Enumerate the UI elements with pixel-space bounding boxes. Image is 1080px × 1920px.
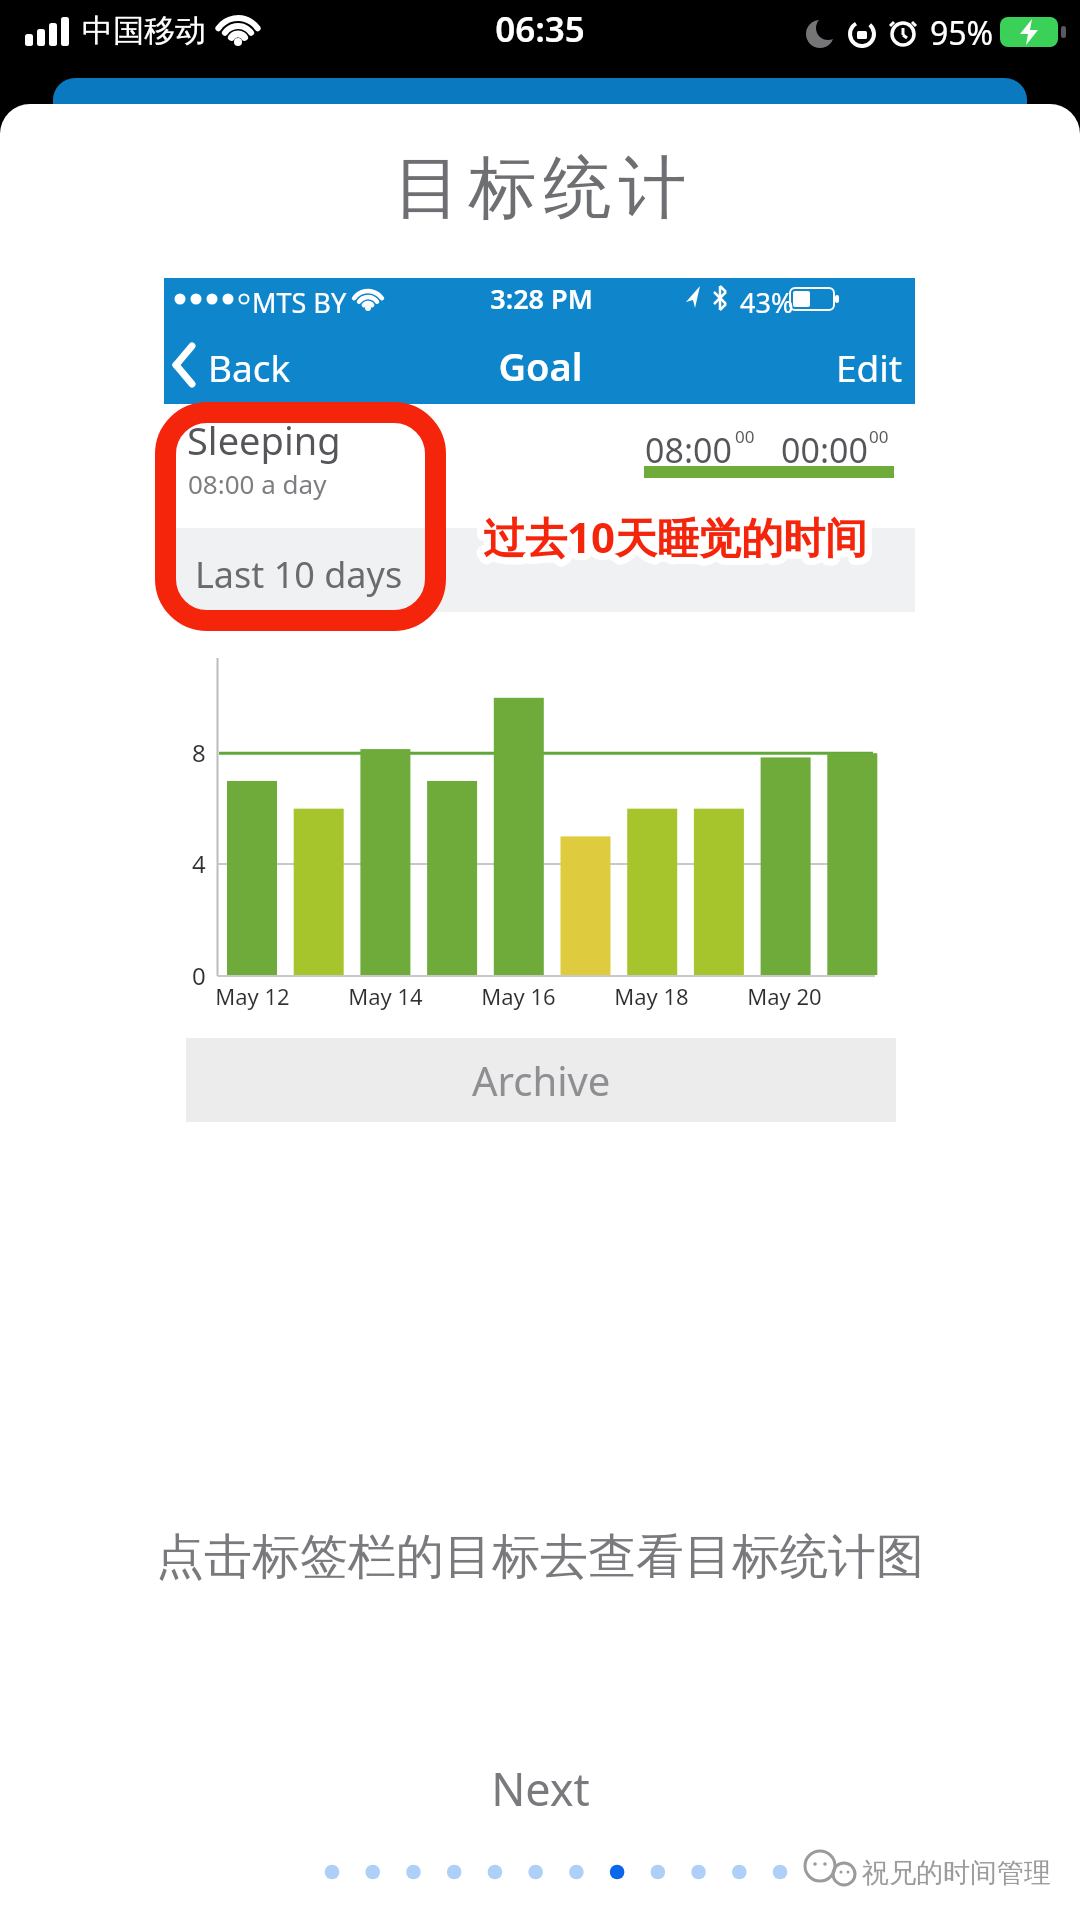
staticText: 00: [869, 425, 889, 448]
button[interactable]: Archive: [186, 1038, 896, 1122]
staticText: 08:00: [645, 427, 732, 473]
staticText: Last 10 days: [195, 550, 403, 599]
staticText: 目标统计: [390, 146, 690, 232]
staticText: 4: [192, 847, 206, 880]
staticText: 00: [735, 425, 755, 448]
staticText: May 14: [348, 981, 423, 1011]
staticText: 06:35: [495, 5, 585, 53]
staticText: 点击标签栏的目标去查看目标统计图: [156, 1527, 924, 1587]
staticText: May 16: [481, 981, 556, 1011]
staticText: Next: [491, 1758, 590, 1819]
staticText: 95%: [930, 11, 994, 55]
staticText: 0: [192, 959, 206, 992]
staticText: 00:00: [781, 427, 868, 473]
staticText: 过去10天睡觉的时间: [483, 508, 868, 565]
staticText: 祝兄的时间管理: [862, 1856, 1051, 1890]
staticText: MTS BY: [252, 284, 347, 321]
staticText: 8: [192, 736, 206, 769]
staticText: May 18: [614, 981, 689, 1011]
button[interactable]: Next: [0, 0, 220, 70]
staticText: 08:00 a day: [188, 466, 327, 501]
staticText: 过去10天睡觉的时间: [483, 508, 868, 565]
staticText: May 12: [215, 981, 290, 1011]
staticText: May 20: [747, 981, 822, 1011]
staticText: Archive: [472, 1053, 611, 1107]
button[interactable]: Back: [0, 0, 83, 50]
button[interactable]: Edit: [0, 0, 67, 50]
staticText: 中国移动: [82, 11, 206, 50]
staticText: 43%: [740, 284, 794, 321]
staticText: Sleeping: [187, 414, 341, 466]
staticText: 3:28 PM: [490, 280, 593, 317]
staticText: Goal: [498, 340, 583, 390]
